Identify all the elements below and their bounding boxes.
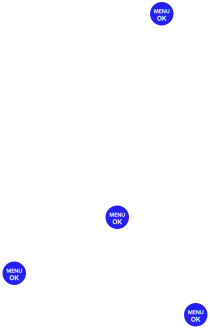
button[interactable]: Menu OK bbox=[150, 2, 173, 25]
staticText: MENU bbox=[188, 309, 204, 316]
staticText: MENU bbox=[109, 212, 125, 218]
button[interactable]: Menu OK bbox=[184, 303, 207, 326]
button[interactable]: Menu OK bbox=[105, 205, 129, 229]
staticText: OK bbox=[9, 274, 19, 282]
button[interactable]: Menu OK bbox=[2, 261, 26, 285]
staticText: MENU bbox=[6, 268, 22, 274]
staticText: OK bbox=[191, 315, 201, 323]
staticText: OK bbox=[112, 218, 122, 226]
staticText: MENU bbox=[154, 8, 170, 15]
staticText: OK bbox=[157, 14, 167, 22]
